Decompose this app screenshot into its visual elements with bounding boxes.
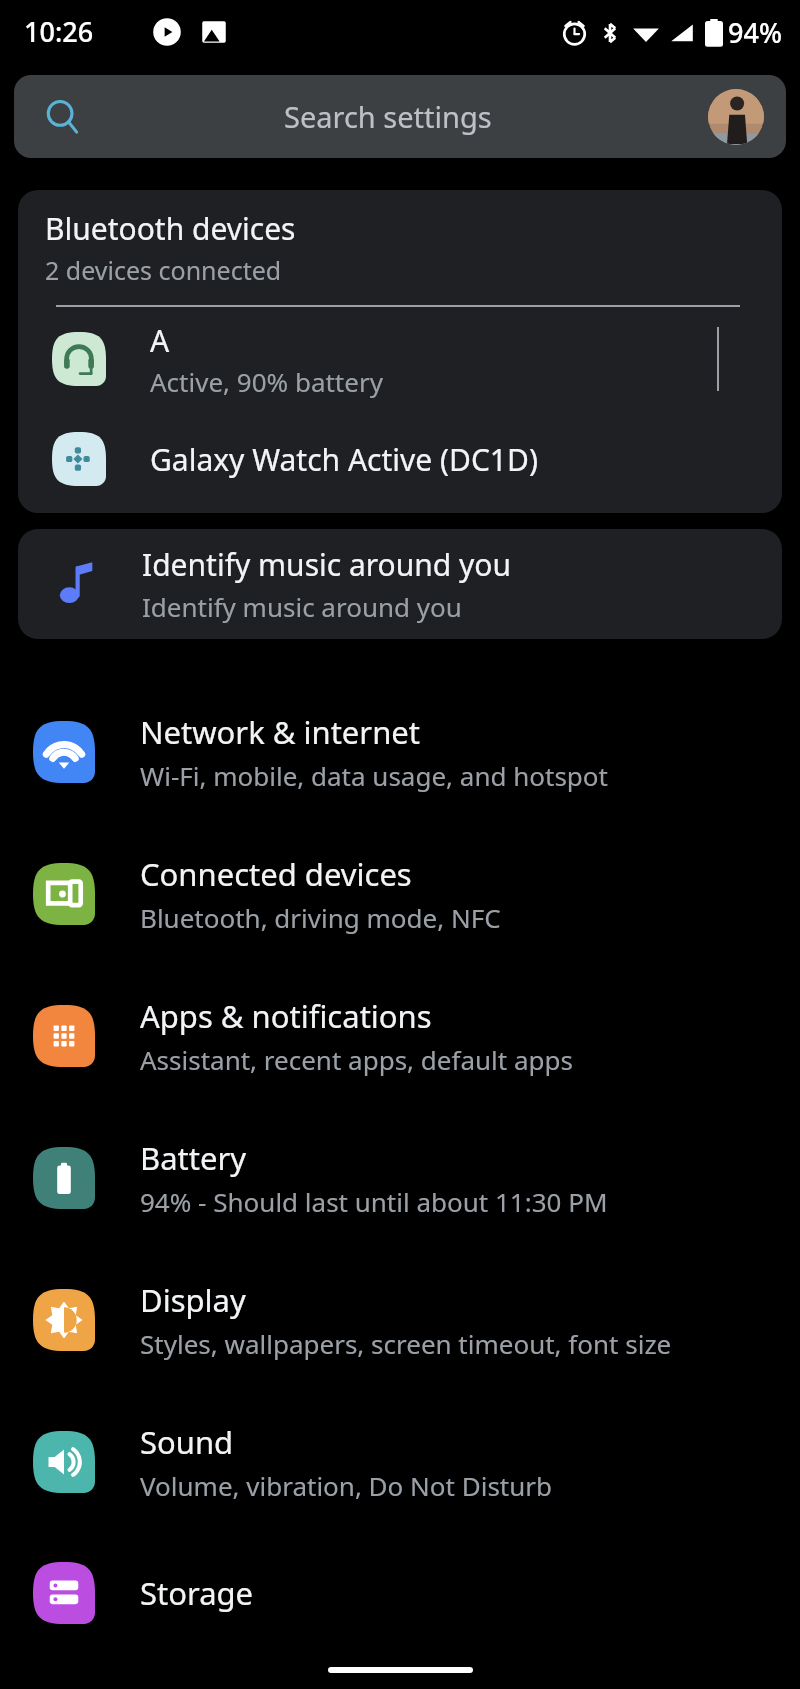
staticText: Display	[140, 1279, 246, 1321]
other: Search	[45, 99, 81, 135]
staticText: Active, 90% battery	[150, 364, 383, 399]
staticText: Search settings	[284, 97, 492, 136]
staticText: 94%	[728, 14, 782, 51]
staticText: Volume, vibration, Do Not Disturb	[140, 1468, 553, 1503]
staticText: Connected devices	[140, 853, 412, 895]
staticText: Assistant, recent apps, default apps	[140, 1042, 573, 1077]
button[interactable]: Network & internet	[0, 681, 800, 823]
staticText: Network & internet	[140, 711, 420, 753]
staticText: Apps & notifications	[140, 995, 432, 1037]
button[interactable]: Connected devices	[0, 823, 800, 965]
staticText: Styles, wallpapers, screen timeout, font…	[140, 1326, 672, 1361]
button[interactable]: Bluetooth devices	[18, 190, 782, 297]
staticText: Sound	[140, 1421, 234, 1463]
button[interactable]: Storage	[0, 1533, 800, 1653]
staticText: Storage	[140, 1572, 254, 1614]
staticText: 94% - Should last until about 11:30 PM	[140, 1184, 608, 1219]
staticText: Identify music around you	[142, 589, 462, 624]
button[interactable]: A	[18, 307, 782, 411]
button[interactable]: Battery	[0, 1107, 800, 1249]
staticText: Galaxy Watch Active (DC1D)	[150, 439, 538, 480]
staticText: A	[150, 320, 170, 361]
staticText: Wi-Fi, mobile, data usage, and hotspot	[140, 758, 608, 793]
button[interactable]: Display	[0, 1249, 800, 1391]
button[interactable]: Search	[14, 75, 786, 158]
staticText: Bluetooth, driving mode, NFC	[140, 900, 501, 935]
button[interactable]: Sound	[0, 1391, 800, 1533]
button[interactable]: Apps & notifications	[0, 965, 800, 1107]
staticText: 2 devices connected	[45, 253, 282, 287]
staticText: 10:26	[24, 13, 94, 50]
staticText: Battery	[140, 1137, 247, 1179]
staticText: Bluetooth devices	[45, 208, 296, 249]
button[interactable]: Identify music around you	[18, 529, 782, 639]
button[interactable]: Galaxy Watch Active (DC1D)	[18, 411, 782, 507]
staticText: Identify music around you	[142, 544, 512, 585]
button[interactable]: Account	[708, 89, 764, 145]
